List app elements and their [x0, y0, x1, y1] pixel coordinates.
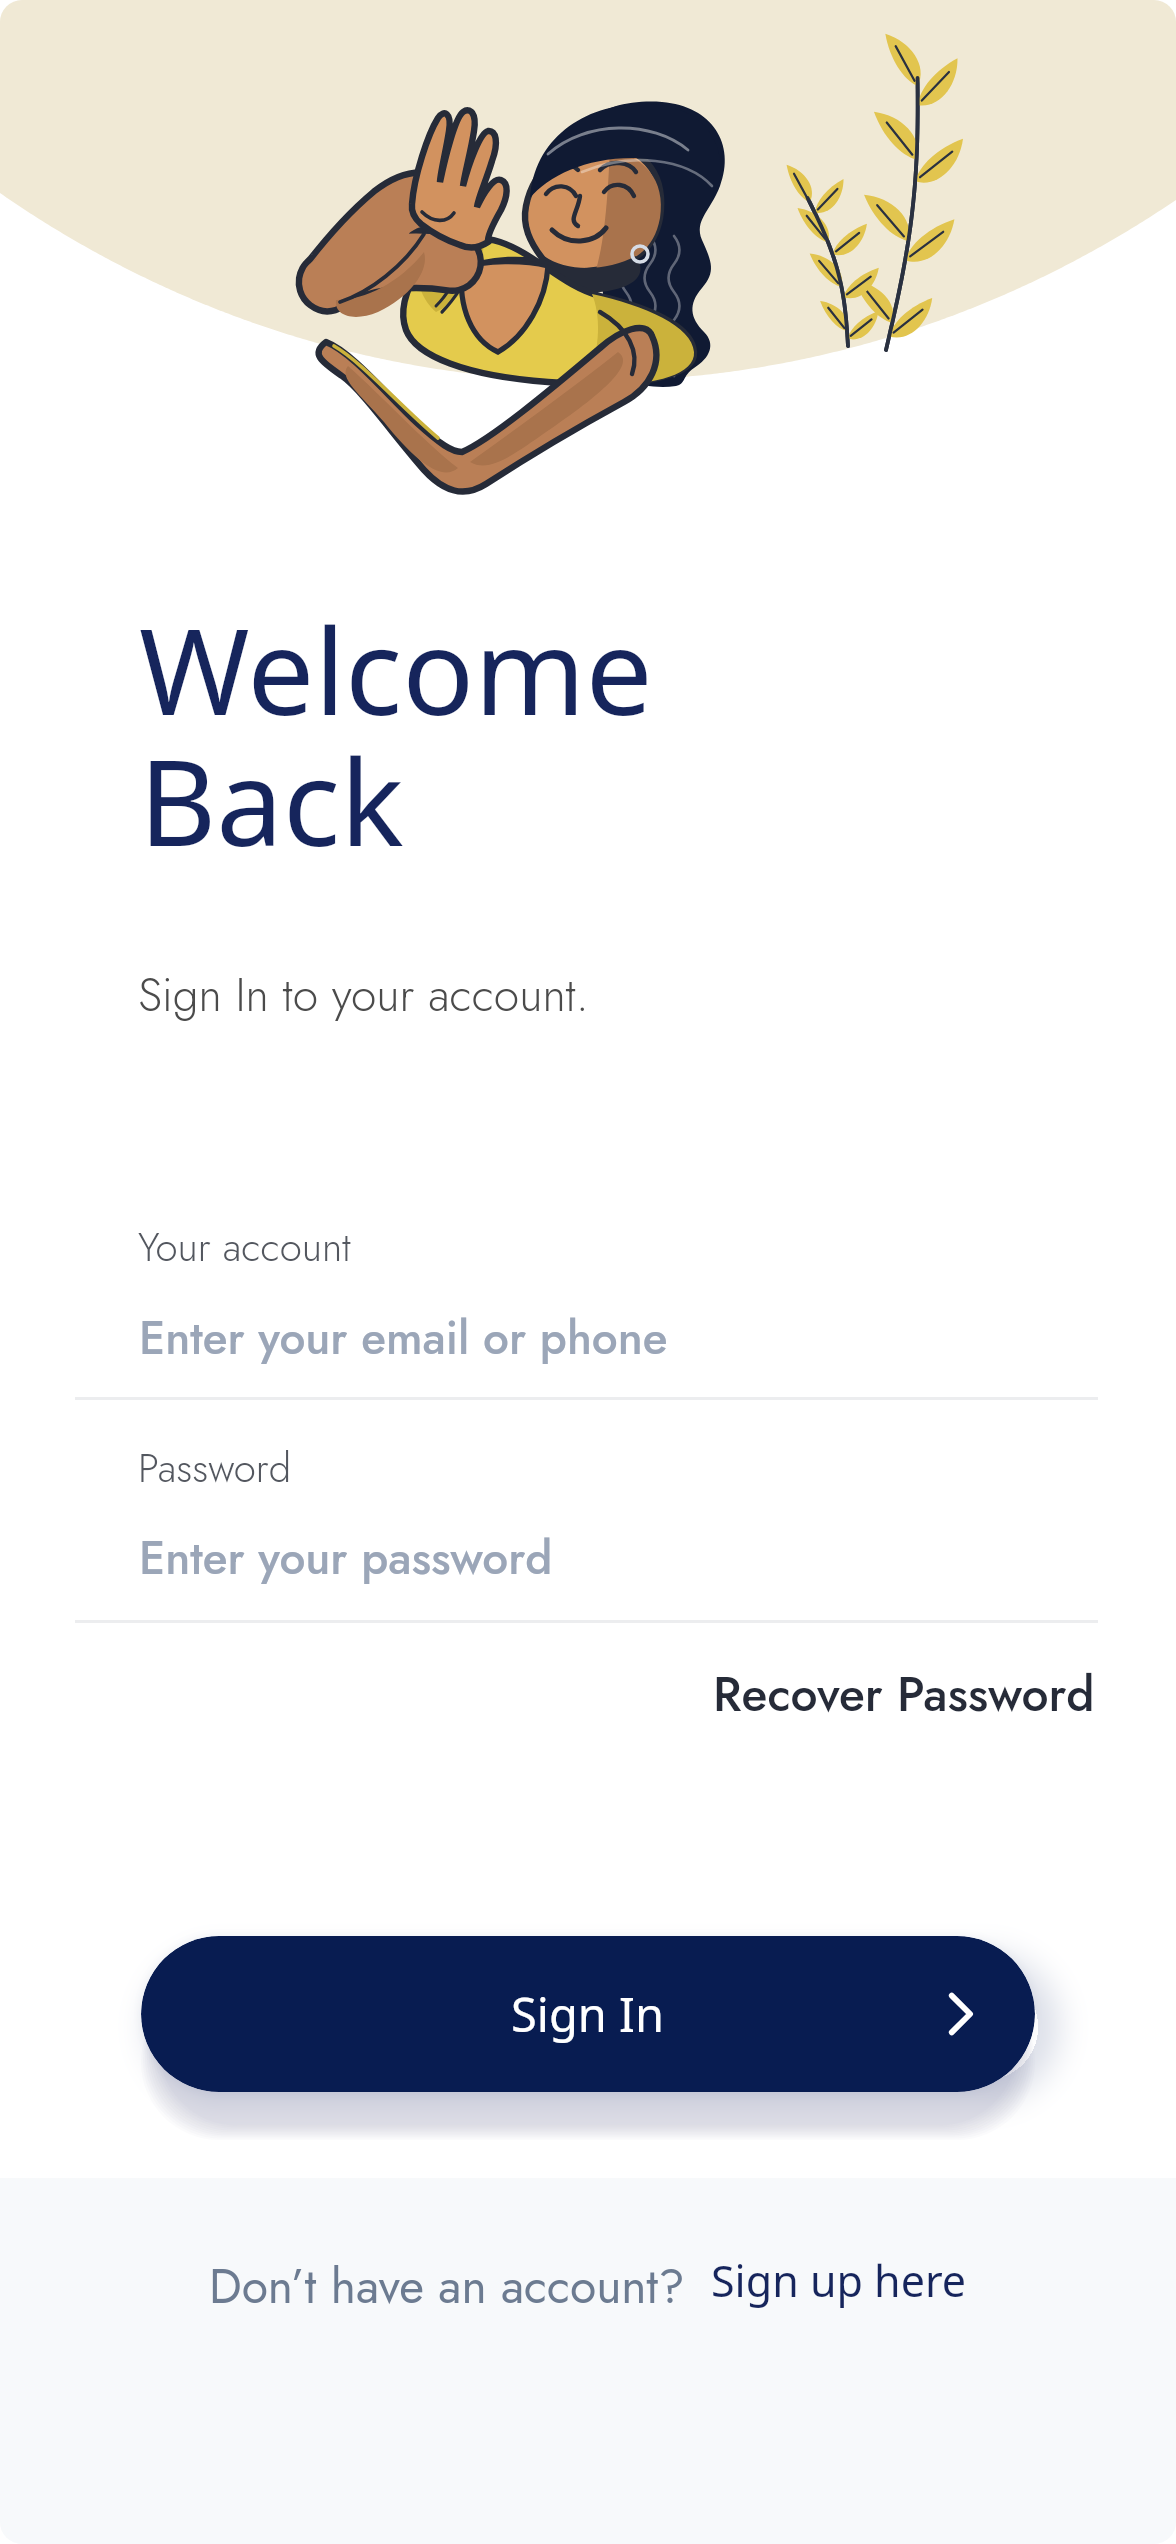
button[interactable]: Sign up here	[691, 2231, 987, 2330]
button[interactable]: Sign In	[141, 1936, 1035, 2092]
staticText: Sign In to your account.	[138, 962, 589, 1028]
staticText: Enter your password	[139, 1525, 553, 1591]
staticText: Sign up here	[711, 2251, 967, 2310]
staticText: Sign In	[511, 1982, 665, 2046]
staticText: Don’t have an account?	[209, 2252, 685, 2321]
staticText: Your account	[138, 1218, 351, 1276]
staticText: Recover Password	[713, 1660, 1095, 1729]
button[interactable]: Password	[75, 1417, 1098, 1620]
button[interactable]: Your account	[75, 1196, 1098, 1398]
other: Continue	[937, 1991, 983, 2037]
staticText: Welcome Back	[139, 588, 653, 881]
staticText: Enter your email or phone	[139, 1305, 668, 1371]
button[interactable]: Recover Password	[689, 1636, 1119, 1753]
staticText: Password	[138, 1439, 292, 1497]
